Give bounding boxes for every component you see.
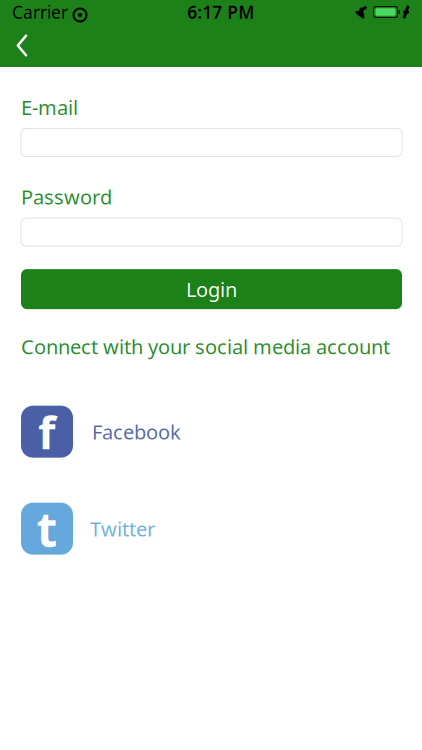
staticText: 6:17 PM — [187, 0, 254, 23]
button[interactable]: t — [0, 503, 422, 555]
staticText: Connect with your social media account — [21, 333, 390, 360]
staticText: Password — [21, 184, 112, 210]
staticText: f — [38, 402, 56, 462]
staticText: Carrier — [12, 0, 68, 23]
button[interactable]: Back — [0, 24, 44, 67]
staticText: Login — [186, 276, 237, 302]
staticText: t — [36, 497, 57, 560]
button[interactable]: Login — [21, 269, 402, 309]
button[interactable]: f — [0, 406, 422, 458]
staticText: Twitter — [90, 515, 155, 542]
staticText: Facebook — [92, 418, 181, 445]
staticText: E-mail — [21, 94, 78, 121]
